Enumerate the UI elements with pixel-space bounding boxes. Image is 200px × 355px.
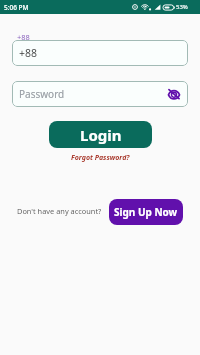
button[interactable]: Password [12,81,188,107]
button[interactable]: Toggle password visibility [166,86,182,102]
staticText: Sign Up Now [114,205,178,219]
button[interactable]: Login [49,121,152,148]
button[interactable]: Sign Up Now [109,199,183,225]
button[interactable]: Forgot Password? [0,152,200,164]
button[interactable]: +88 [12,40,188,66]
staticText: Login [80,125,122,145]
staticText: Forgot Password? [71,153,130,163]
staticText: Password [19,87,65,101]
staticText: Don't have any account? [17,206,102,216]
staticText: +88 [19,46,38,60]
staticText: +88 [17,32,30,42]
staticText: 53% [176,3,188,11]
staticText: 5:06 PM [4,3,29,12]
